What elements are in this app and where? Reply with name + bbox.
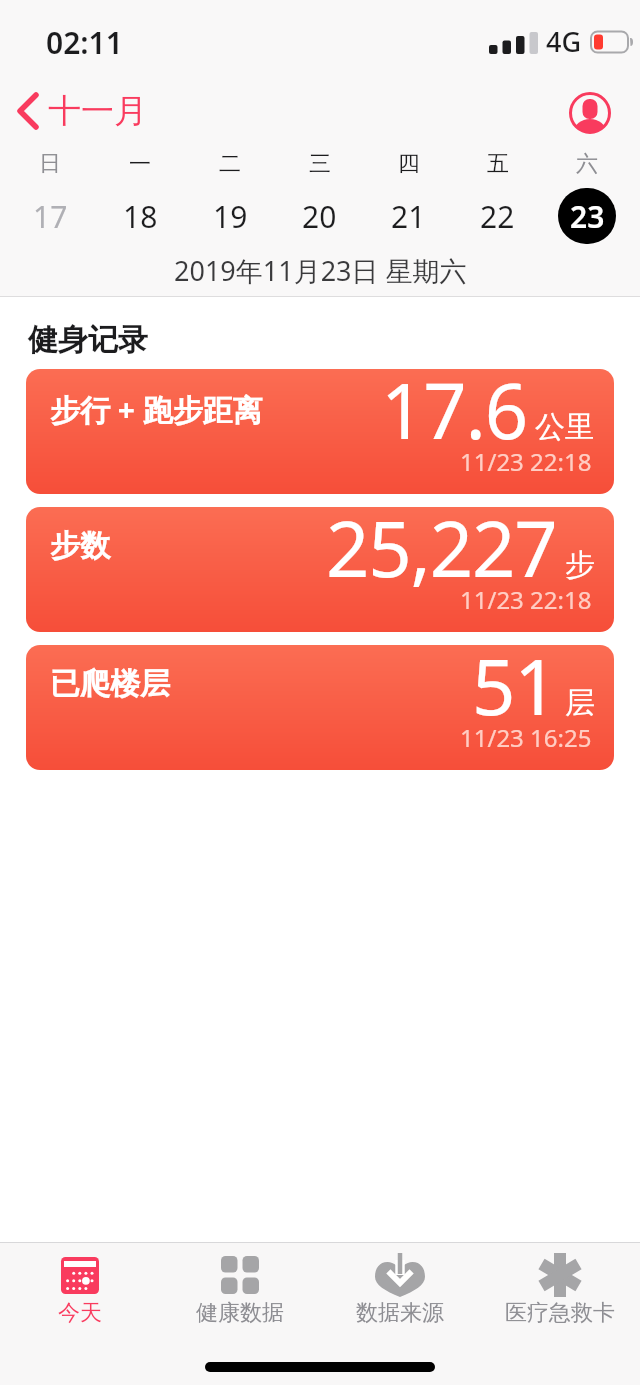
staticText: 步数: [50, 527, 110, 565]
staticText: 2019年11月23日 星期六: [174, 252, 467, 289]
button[interactable]: 数据来源: [320, 1253, 480, 1327]
staticText: 二: [219, 150, 241, 178]
staticText: 步: [565, 546, 595, 584]
staticText: 四: [398, 150, 420, 178]
button[interactable]: 健康数据: [160, 1253, 320, 1327]
staticText: 21: [391, 196, 426, 237]
staticText: 医疗急救卡: [505, 1299, 615, 1327]
button[interactable]: 23: [542, 188, 631, 244]
staticText: 23: [570, 196, 605, 237]
staticText: 步行 + 跑步距离: [50, 389, 263, 430]
staticText: 17: [33, 196, 68, 237]
button[interactable]: 17: [5, 188, 95, 244]
button[interactable]: 医疗急救卡: [480, 1253, 640, 1327]
staticText: 健康数据: [196, 1299, 284, 1327]
staticText: 25,227: [326, 507, 557, 600]
staticText: 健身记录: [28, 321, 148, 359]
staticText: 十一月: [48, 90, 147, 132]
staticText: 数据来源: [356, 1299, 444, 1327]
button[interactable]: 步数: [26, 507, 614, 632]
button[interactable]: 20: [275, 188, 364, 244]
button[interactable]: [569, 92, 611, 134]
staticText: 日: [39, 150, 61, 178]
button[interactable]: 今天: [0, 1253, 160, 1327]
staticText: 已爬楼层: [50, 665, 170, 703]
staticText: 11/23 22:18: [460, 583, 592, 616]
staticText: 三: [309, 150, 331, 178]
button[interactable]: 步行 + 跑步距离: [26, 369, 614, 494]
staticText: 19: [213, 196, 248, 237]
button[interactable]: 18: [95, 188, 185, 244]
staticText: 51: [472, 645, 557, 738]
staticText: 层: [565, 684, 595, 722]
staticText: 11/23 22:18: [460, 445, 592, 478]
staticText: 公里: [535, 408, 595, 446]
staticText: 20: [302, 196, 337, 237]
staticText: 4G: [546, 23, 582, 60]
staticText: 今天: [58, 1299, 102, 1327]
button[interactable]: 22: [453, 188, 542, 244]
staticText: 11/23 16:25: [460, 721, 592, 754]
staticText: 02:11: [46, 22, 123, 63]
button[interactable]: 19: [185, 188, 275, 244]
button[interactable]: 十一月: [16, 90, 147, 132]
staticText: 六: [576, 150, 598, 178]
staticText: 一: [129, 150, 151, 178]
staticText: 17.6: [381, 369, 527, 462]
staticText: 22: [480, 196, 515, 237]
button[interactable]: 已爬楼层: [26, 645, 614, 770]
staticText: 18: [123, 196, 158, 237]
staticText: 五: [487, 150, 509, 178]
button[interactable]: 21: [364, 188, 453, 244]
